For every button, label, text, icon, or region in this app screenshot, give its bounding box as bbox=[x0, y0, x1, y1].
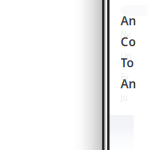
staticText: Ev bbox=[120, 72, 128, 82]
staticText: Un bbox=[120, 51, 131, 61]
staticText: Co bbox=[120, 34, 135, 50]
staticText: An bbox=[120, 76, 136, 92]
button[interactable]: Co bbox=[109, 37, 147, 58]
staticText: To bbox=[120, 55, 133, 71]
staticText: Ju bbox=[120, 93, 127, 103]
staticText: Ne bbox=[120, 30, 131, 40]
button[interactable]: To bbox=[109, 58, 147, 79]
button[interactable]: An bbox=[109, 79, 147, 100]
button[interactable]: An bbox=[109, 16, 147, 37]
staticText: An bbox=[120, 13, 136, 29]
